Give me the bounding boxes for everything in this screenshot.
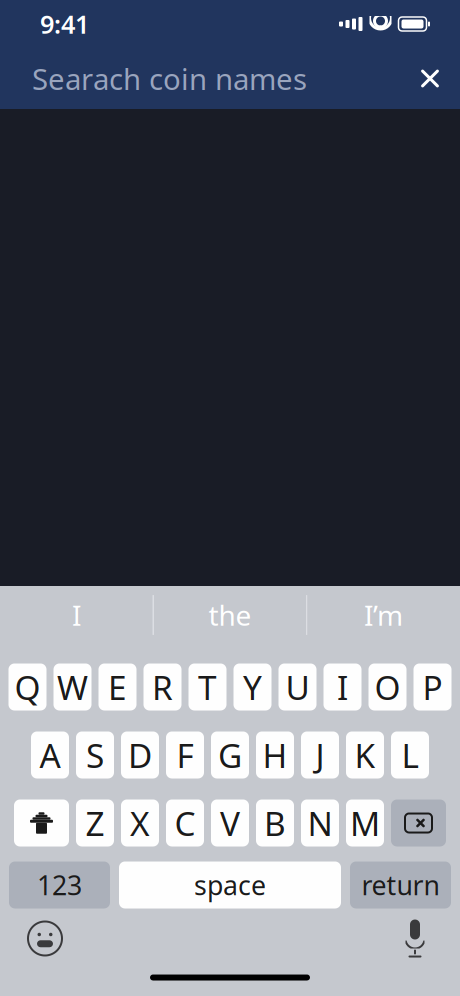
staticText: the (208, 596, 251, 634)
button[interactable]: N (301, 799, 339, 846)
staticText: I’m (364, 596, 403, 634)
button[interactable]: V (211, 799, 249, 846)
button[interactable]: H (256, 731, 294, 778)
staticText: R (152, 665, 173, 709)
staticText: I (72, 596, 81, 634)
button[interactable]: U (278, 663, 316, 710)
button[interactable]: F (166, 731, 204, 778)
staticText: O (374, 665, 400, 709)
button[interactable]: I (0, 587, 152, 642)
staticText: E (108, 665, 127, 709)
staticText: B (264, 801, 286, 845)
staticText: return (361, 867, 439, 903)
button[interactable]: Delete (391, 799, 446, 846)
button[interactable]: C (166, 799, 204, 846)
button[interactable]: S (76, 731, 114, 778)
staticText: G (218, 733, 242, 777)
button[interactable]: W (53, 663, 91, 710)
staticText: Searach coin names (32, 59, 307, 98)
button[interactable]: R (143, 663, 181, 710)
button[interactable]: I (323, 663, 361, 710)
staticText: F (176, 733, 193, 777)
staticText: H (262, 733, 287, 777)
button[interactable]: T (188, 663, 226, 710)
staticText: Q (14, 665, 40, 709)
staticText: V (220, 801, 240, 845)
staticText: S (86, 733, 104, 777)
staticText: T (198, 665, 217, 709)
button[interactable]: D (121, 731, 159, 778)
staticText: J (315, 733, 324, 777)
staticText: X (130, 801, 150, 845)
staticText: space (194, 867, 266, 903)
staticText: I (337, 665, 348, 709)
staticText: M (350, 801, 380, 845)
button[interactable]: P (413, 663, 451, 710)
button[interactable]: Y (233, 663, 271, 710)
button[interactable]: the (154, 587, 306, 642)
staticText: Z (85, 801, 104, 845)
button[interactable]: 123 (9, 861, 110, 908)
button[interactable]: O (368, 663, 406, 710)
button[interactable]: space (119, 861, 341, 908)
button[interactable]: A (31, 731, 69, 778)
button[interactable]: return (350, 861, 451, 908)
staticText: A (39, 733, 60, 777)
staticText: L (401, 733, 418, 777)
button[interactable]: Q (8, 663, 46, 710)
staticText: 123 (37, 867, 82, 903)
button[interactable]: K (346, 731, 384, 778)
staticText: U (285, 665, 309, 709)
staticText: N (307, 801, 332, 845)
staticText: 9:41 (40, 7, 89, 41)
button[interactable]: E (98, 663, 136, 710)
staticText: C (174, 801, 195, 845)
button[interactable]: B (256, 799, 294, 846)
button[interactable]: Shift (14, 799, 69, 846)
button[interactable]: G (211, 731, 249, 778)
button[interactable]: Dictation (390, 913, 440, 963)
button[interactable]: Close search (406, 54, 454, 102)
button[interactable]: J (301, 731, 339, 778)
staticText: P (422, 665, 442, 709)
button[interactable]: X (121, 799, 159, 846)
button[interactable]: Emoji (20, 913, 70, 963)
button[interactable]: Z (76, 799, 114, 846)
staticText: W (57, 665, 88, 709)
staticText: Y (243, 665, 262, 709)
button[interactable]: M (346, 799, 384, 846)
button[interactable]: I’m (307, 587, 459, 642)
staticText: D (128, 733, 152, 777)
button[interactable]: L (391, 731, 429, 778)
staticText: K (354, 733, 375, 777)
